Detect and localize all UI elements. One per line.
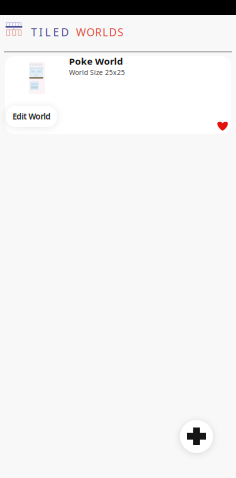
- button[interactable]: Edit World: [6, 106, 57, 127]
- staticText: WORLDS: [76, 25, 123, 39]
- button[interactable]: Favourite: [217, 121, 228, 131]
- staticText: Edit World: [12, 111, 50, 122]
- staticText: World Size 25x25: [69, 68, 125, 77]
- staticText: Poke World: [69, 55, 123, 67]
- staticText: TILED: [31, 25, 69, 39]
- button[interactable]: Add world: [180, 420, 213, 453]
